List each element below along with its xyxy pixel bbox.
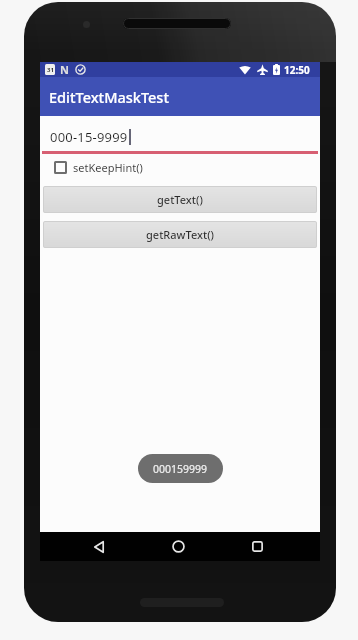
button[interactable]: getText()	[43, 186, 317, 213]
button[interactable]	[69, 532, 129, 561]
staticText: 12:50	[284, 63, 310, 77]
staticText: getRawText()	[146, 227, 215, 242]
staticText: 000-15-9999	[50, 128, 128, 146]
staticText: N	[60, 62, 69, 77]
button[interactable]: setKeepHint()	[54, 160, 143, 175]
button[interactable]: 000-15-9999	[42, 128, 318, 154]
staticText: EditTextMaskTest	[49, 87, 169, 107]
button[interactable]	[227, 532, 287, 561]
button[interactable]: getRawText()	[43, 221, 317, 248]
staticText: 31	[47, 66, 54, 74]
button[interactable]	[148, 532, 208, 561]
staticText: getText()	[157, 192, 203, 207]
staticText: setKeepHint()	[73, 160, 143, 175]
staticText: 000159999	[153, 462, 208, 476]
